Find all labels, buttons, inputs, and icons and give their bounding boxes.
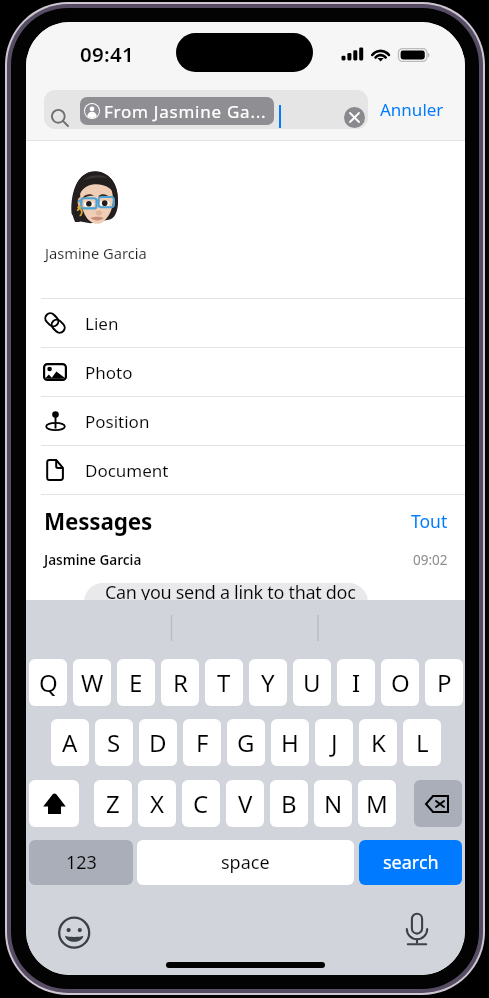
staticText: Y [261,666,275,699]
button[interactable]: Tout [411,509,448,533]
staticText: X [150,787,165,820]
button[interactable]: U [293,659,331,706]
staticText: Position [85,410,150,433]
staticText: Q [39,666,58,699]
staticText: Messages [44,506,153,537]
button[interactable]: J [315,719,353,766]
button[interactable]: Q [29,659,67,706]
button[interactable]: Clear search [344,107,365,128]
button[interactable]: Lien [26,299,465,347]
staticText: Document [85,459,169,482]
staticText: L [416,726,429,759]
staticText: M [366,787,388,820]
staticText: Lien [85,312,119,335]
button[interactable]: K [359,719,397,766]
button[interactable]: F [183,719,221,766]
staticText: A [62,726,78,759]
button[interactable]: Dictation [399,907,439,947]
staticText: Can you send a link to that doc [105,583,356,605]
staticText: S [107,726,121,759]
button[interactable]: D [139,719,177,766]
button[interactable]: N [314,780,352,827]
button[interactable]: Position [26,397,465,445]
staticText: Jasmine Garcia [45,243,147,263]
button[interactable] [29,780,79,827]
button[interactable]: W [73,659,111,706]
staticText: B [281,787,297,820]
staticText: Tout [411,509,448,533]
button[interactable]: X [138,780,176,827]
staticText: O [391,666,410,699]
button[interactable]: Y [249,659,287,706]
staticText: R [173,666,188,699]
staticText: From Jasmine Ga... [104,100,267,123]
button[interactable]: B [270,780,308,827]
staticText: U [303,666,321,699]
button[interactable]: Annuler [376,92,448,127]
staticText: D [149,726,167,759]
button[interactable] [414,780,462,827]
staticText: H [281,726,299,759]
staticText: 09:41 [80,40,135,68]
staticText: T [217,666,231,699]
button[interactable]: R [161,659,199,706]
staticText: search [383,850,439,875]
staticText: J [331,726,338,759]
button[interactable]: Z [94,780,132,827]
button[interactable]: O [381,659,419,706]
button[interactable]: C [182,780,220,827]
button[interactable]: P [425,659,463,706]
button[interactable]: L [403,719,441,766]
staticText: W [81,666,104,699]
button[interactable]: T [205,659,243,706]
button[interactable]: 123 [29,840,133,885]
staticText: K [371,726,386,759]
staticText: Z [106,787,120,820]
staticText: C [193,787,209,820]
button[interactable]: G [227,719,265,766]
button[interactable]: search [359,840,462,885]
staticText: Photo [85,361,133,384]
staticText: G [237,726,255,759]
staticText: 09:02 [413,551,448,569]
staticText: V [238,787,253,820]
button[interactable]: H [271,719,309,766]
staticText: space [221,850,270,875]
staticText: F [196,726,209,759]
button[interactable]: Emoji keyboard [59,916,99,956]
button[interactable]: S [95,719,133,766]
button[interactable]: Photo [26,348,465,396]
staticText: I [352,666,361,699]
button[interactable]: I [337,659,375,706]
button[interactable]: A [51,719,89,766]
staticText: Annuler [380,98,444,121]
button[interactable]: space [137,840,354,885]
button[interactable]: E [117,659,155,706]
button[interactable]: V [226,780,264,827]
staticText: E [129,666,143,699]
button[interactable]: M [358,780,396,827]
staticText: P [437,666,452,699]
button[interactable]: Document [26,446,465,494]
staticText: N [324,787,343,820]
staticText: 123 [66,850,97,875]
staticText: Jasmine Garcia [44,551,142,569]
button[interactable]: From Jasmine Ga... [44,90,368,129]
